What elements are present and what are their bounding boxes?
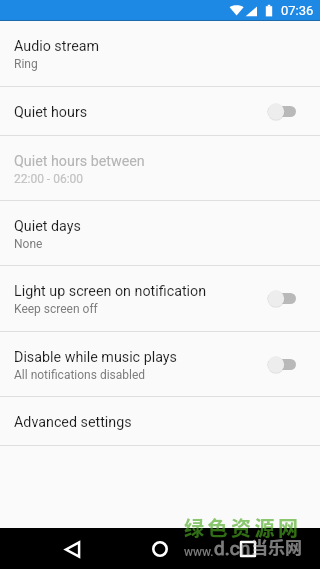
button[interactable]: Back — [56, 533, 88, 565]
button[interactable]: Quiet days — [0, 201, 320, 265]
button[interactable]: Quiet hours between — [0, 136, 320, 200]
staticText: None — [14, 237, 43, 251]
button[interactable]: Recents — [232, 533, 264, 565]
other: Toggle — [267, 355, 296, 374]
staticText: 绿色资源网 — [184, 513, 302, 542]
other: Toggle — [267, 102, 296, 121]
staticText: Disable while music plays — [14, 349, 177, 366]
staticText: www. — [184, 545, 214, 559]
staticText: Keep screen off — [14, 302, 98, 316]
button[interactable]: Advanced settings — [0, 397, 320, 445]
staticText: Audio stream — [14, 38, 100, 55]
staticText: Light up screen on notification — [14, 283, 207, 300]
staticText: 07:36 — [281, 3, 314, 18]
staticText: Ring — [14, 57, 38, 71]
staticText: d.cn — [214, 537, 251, 559]
staticText: Advanced settings — [14, 414, 132, 431]
button[interactable]: Disable while music plays — [0, 332, 320, 396]
button[interactable]: Audio stream — [0, 21, 320, 86]
button[interactable]: Quiet hours — [0, 87, 320, 135]
staticText: 当乐网 — [251, 534, 302, 559]
staticText: All notifications disabled — [14, 368, 146, 382]
button[interactable]: Home — [144, 533, 176, 565]
staticText: Quiet hours between — [14, 153, 145, 170]
staticText: Quiet days — [14, 218, 81, 235]
staticText: 22:00 - 06:00 — [14, 172, 84, 186]
other: Toggle — [267, 289, 296, 308]
button[interactable]: Light up screen on notification — [0, 266, 320, 331]
staticText: Quiet hours — [14, 104, 88, 121]
